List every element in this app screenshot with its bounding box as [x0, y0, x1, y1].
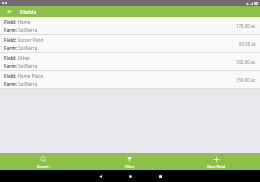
button[interactable]: Back: [98, 174, 102, 178]
staticText: Farm: SoilSerra: [4, 27, 38, 33]
staticText: 93.00 ac: [239, 41, 256, 47]
button[interactable]: Home: [128, 174, 132, 178]
staticText: 178.00 ac: [236, 23, 256, 29]
staticText: New Field: [207, 164, 226, 169]
staticText: Field: Other: [4, 55, 30, 61]
staticText: Search: [37, 164, 50, 169]
button[interactable]: Search: [0, 153, 86, 169]
staticText: Filter: [125, 164, 135, 169]
staticText: Field: Home: [4, 19, 31, 25]
button[interactable]: Filter: [86, 153, 173, 169]
staticText: Field: Soccer Field: [4, 37, 43, 43]
staticText: 150.00 ac: [236, 77, 256, 83]
button[interactable]: Field: Other: [0, 53, 260, 70]
button[interactable]: Recent apps: [158, 174, 162, 178]
staticText: 102.00 ac: [236, 59, 256, 65]
button[interactable]: Field: Home: [0, 17, 260, 34]
staticText: Farm: SoilSerra: [4, 45, 38, 51]
staticText: Fields: [20, 8, 37, 16]
staticText: Farm: SoilSerra: [4, 63, 38, 69]
button[interactable]: New Field: [173, 153, 260, 169]
button[interactable]: Back: [5, 7, 14, 16]
button[interactable]: Field: Soccer Field: [0, 35, 260, 52]
staticText: Field: Home Place: [4, 73, 43, 79]
staticText: Farm: SoilSerra: [4, 81, 38, 87]
button[interactable]: Field: Home Place: [0, 71, 260, 88]
